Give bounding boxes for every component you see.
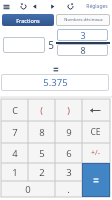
button[interactable] [82, 163, 110, 197]
button[interactable]: Nombres décimaux [56, 14, 110, 26]
staticText: ) [67, 104, 70, 116]
staticText: Fractions [16, 17, 40, 24]
button[interactable]: +/- [82, 143, 109, 163]
staticText: 9 [66, 126, 72, 139]
button[interactable]: . [55, 181, 82, 197]
button[interactable]: 2 [28, 163, 55, 181]
button[interactable] [57, 44, 108, 56]
staticText: CE [90, 126, 101, 138]
button[interactable]: 7 [1, 121, 28, 143]
button[interactable]: C [1, 99, 28, 121]
staticText: 5.375 [43, 76, 68, 89]
button[interactable]: CE [82, 121, 109, 143]
button[interactable]: 8 [28, 121, 55, 143]
button[interactable]: Réglages [83, 2, 110, 11]
staticText: 5 [39, 147, 45, 160]
staticText: C [12, 104, 18, 116]
button[interactable]: ( [28, 99, 55, 121]
button[interactable]: 4 [1, 143, 28, 163]
button[interactable]: 5 [28, 143, 55, 163]
staticText: 6 [66, 147, 72, 160]
staticText: 2 [39, 166, 45, 179]
button[interactable]: 3 [55, 163, 82, 181]
button[interactable] [57, 29, 108, 41]
staticText: 5 [48, 38, 54, 52]
button[interactable]: 0 [1, 181, 55, 197]
button[interactable]: 9 [55, 121, 82, 143]
staticText: . [67, 183, 70, 196]
staticText: +/- [91, 148, 100, 158]
staticText: 7 [12, 126, 18, 139]
staticText: Réglages [86, 3, 108, 10]
staticText: 0 [25, 183, 31, 196]
button[interactable]: 6 [55, 143, 82, 163]
button[interactable]: 1 [1, 163, 28, 181]
staticText: 8 [39, 126, 45, 139]
staticText: 1 [12, 166, 18, 179]
staticText: 8 [80, 44, 86, 56]
staticText: Nombres décimaux [64, 17, 103, 23]
staticText: ( [40, 104, 43, 116]
staticText: 4 [12, 147, 18, 160]
button[interactable] [3, 37, 45, 53]
button[interactable]: ) [55, 99, 82, 121]
staticText: 3 [80, 29, 86, 41]
staticText: 3 [66, 166, 72, 179]
button[interactable]: Fractions [2, 14, 54, 26]
button[interactable] [82, 99, 109, 121]
